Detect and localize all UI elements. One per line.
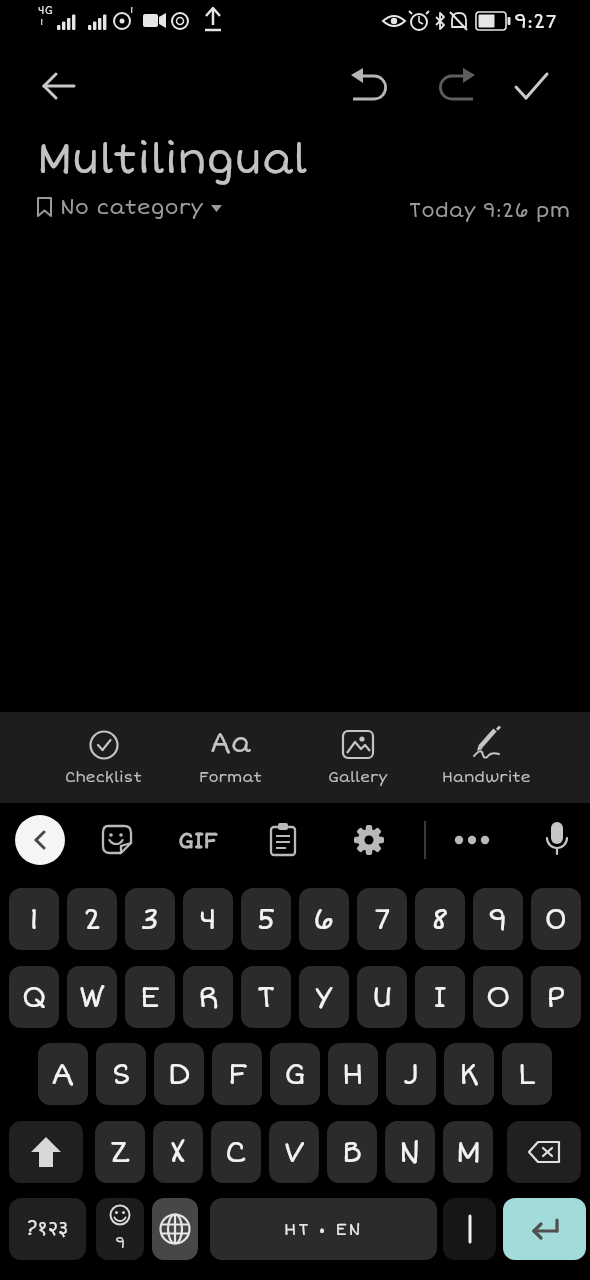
button[interactable]: Aa <box>167 712 294 803</box>
staticText: Aa <box>210 727 252 760</box>
button[interactable]: Gallery <box>294 712 422 803</box>
button[interactable] <box>152 1198 198 1260</box>
button[interactable]: E <box>125 966 175 1028</box>
button[interactable]: 9 <box>96 1198 144 1260</box>
staticText: 1 <box>40 16 44 28</box>
staticText: 9:27 <box>514 9 557 34</box>
button[interactable]: ?१२३ <box>9 1198 86 1260</box>
staticText: 6 <box>313 901 335 938</box>
button[interactable] <box>503 1198 586 1260</box>
staticText: H <box>342 1056 364 1093</box>
staticText: C <box>225 1134 247 1171</box>
button[interactable] <box>347 60 399 112</box>
button[interactable]: Checklist <box>40 712 167 803</box>
button[interactable]: 8 <box>415 888 465 950</box>
staticText: M <box>456 1134 481 1171</box>
button[interactable] <box>95 818 139 862</box>
staticText: K <box>459 1056 479 1093</box>
button[interactable]: N <box>385 1121 435 1183</box>
button[interactable]: 0 <box>531 888 581 950</box>
staticText: 4G <box>38 4 53 18</box>
staticText: Format <box>199 768 262 786</box>
button[interactable]: I <box>415 966 465 1028</box>
staticText: E <box>140 979 160 1016</box>
button[interactable]: O <box>473 966 523 1028</box>
staticText: 9 <box>488 901 508 938</box>
button[interactable]: W <box>67 966 117 1028</box>
button[interactable]: Handwrite <box>422 712 550 803</box>
staticText: 9 <box>115 1233 126 1253</box>
staticText: F <box>228 1056 247 1093</box>
staticText: T <box>257 979 276 1016</box>
button[interactable]: M <box>443 1121 493 1183</box>
staticText: Multilingual <box>37 134 308 186</box>
button[interactable]: 2 <box>67 888 117 950</box>
button[interactable]: Y <box>299 966 349 1028</box>
button[interactable]: F <box>212 1043 262 1105</box>
button[interactable]: 5 <box>241 888 291 950</box>
staticText: Today 9:26 pm <box>409 198 570 223</box>
button[interactable]: V <box>269 1121 319 1183</box>
button[interactable]: Z <box>95 1121 145 1183</box>
button[interactable]: Q <box>9 966 59 1028</box>
staticText: HT • EN <box>284 1219 363 1240</box>
button[interactable]: K <box>444 1043 494 1105</box>
button[interactable] <box>443 1198 496 1260</box>
staticText: Z <box>110 1134 130 1171</box>
button[interactable]: 3 <box>125 888 175 950</box>
staticText: 8 <box>431 901 449 938</box>
staticText: GIF <box>178 827 218 854</box>
button[interactable]: G <box>270 1043 320 1105</box>
staticText: Handwrite <box>442 768 531 786</box>
button[interactable] <box>450 818 494 862</box>
button[interactable] <box>261 818 305 862</box>
button[interactable] <box>30 60 82 112</box>
button[interactable]: 9 <box>473 888 523 950</box>
staticText: 4 <box>199 901 218 938</box>
staticText: W <box>79 979 106 1016</box>
button[interactable]: 4 <box>183 888 233 950</box>
button[interactable]: 1 <box>9 888 59 950</box>
button[interactable]: R <box>183 966 233 1028</box>
button[interactable] <box>507 1121 581 1183</box>
button[interactable]: X <box>153 1121 203 1183</box>
button[interactable]: B <box>327 1121 377 1183</box>
staticText: I <box>433 979 447 1016</box>
button[interactable]: T <box>241 966 291 1028</box>
staticText: No category <box>60 194 204 220</box>
staticText: P <box>546 979 566 1016</box>
staticText: N <box>399 1134 421 1171</box>
staticText: X <box>170 1134 186 1171</box>
staticText: V <box>284 1134 305 1171</box>
button[interactable]: HT • EN <box>210 1198 437 1260</box>
button[interactable]: S <box>96 1043 146 1105</box>
staticText: Checklist <box>65 768 142 786</box>
button[interactable]: L <box>502 1043 552 1105</box>
staticText: Q <box>22 979 47 1016</box>
button[interactable]: P <box>531 966 581 1028</box>
button[interactable]: U <box>357 966 407 1028</box>
button[interactable]: A <box>38 1043 88 1105</box>
button[interactable] <box>535 816 579 860</box>
staticText: Gallery <box>328 768 388 786</box>
staticText: S <box>112 1056 131 1093</box>
staticText: 1 <box>130 4 134 16</box>
button[interactable] <box>505 60 557 112</box>
button[interactable] <box>9 1121 83 1183</box>
staticText: 2 <box>83 901 102 938</box>
button[interactable]: GIF <box>172 820 224 860</box>
button[interactable]: D <box>154 1043 204 1105</box>
staticText: 7 <box>374 901 391 938</box>
button[interactable] <box>15 815 65 865</box>
button[interactable]: H <box>328 1043 378 1105</box>
button[interactable]: J <box>386 1043 436 1105</box>
staticText: 1 <box>29 901 39 938</box>
button[interactable]: C <box>211 1121 261 1183</box>
button[interactable] <box>427 60 479 112</box>
button[interactable]: 6 <box>299 888 349 950</box>
button[interactable]: No category <box>36 194 223 226</box>
staticText: B <box>342 1134 363 1171</box>
button[interactable] <box>347 818 391 862</box>
staticText: ?१२३ <box>26 1216 69 1243</box>
button[interactable]: 7 <box>357 888 407 950</box>
